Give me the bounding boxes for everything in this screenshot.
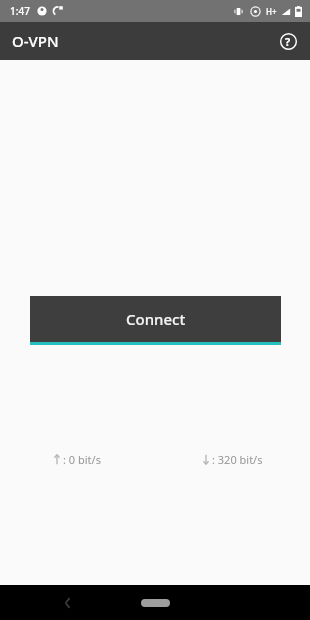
staticText: O-VPN xyxy=(12,31,59,51)
button[interactable]: Home xyxy=(133,592,177,614)
button[interactable]: Back xyxy=(52,588,82,618)
staticText: : 0 bit/s xyxy=(63,452,101,467)
button[interactable]: Connect xyxy=(30,296,281,345)
staticText: : 320 bit/s xyxy=(212,452,263,467)
button[interactable]: Help xyxy=(272,25,304,57)
staticText: H+ xyxy=(266,6,277,17)
staticText: Connect xyxy=(126,309,186,329)
staticText: 1:47 xyxy=(10,4,30,18)
staticText: ? xyxy=(285,34,291,49)
